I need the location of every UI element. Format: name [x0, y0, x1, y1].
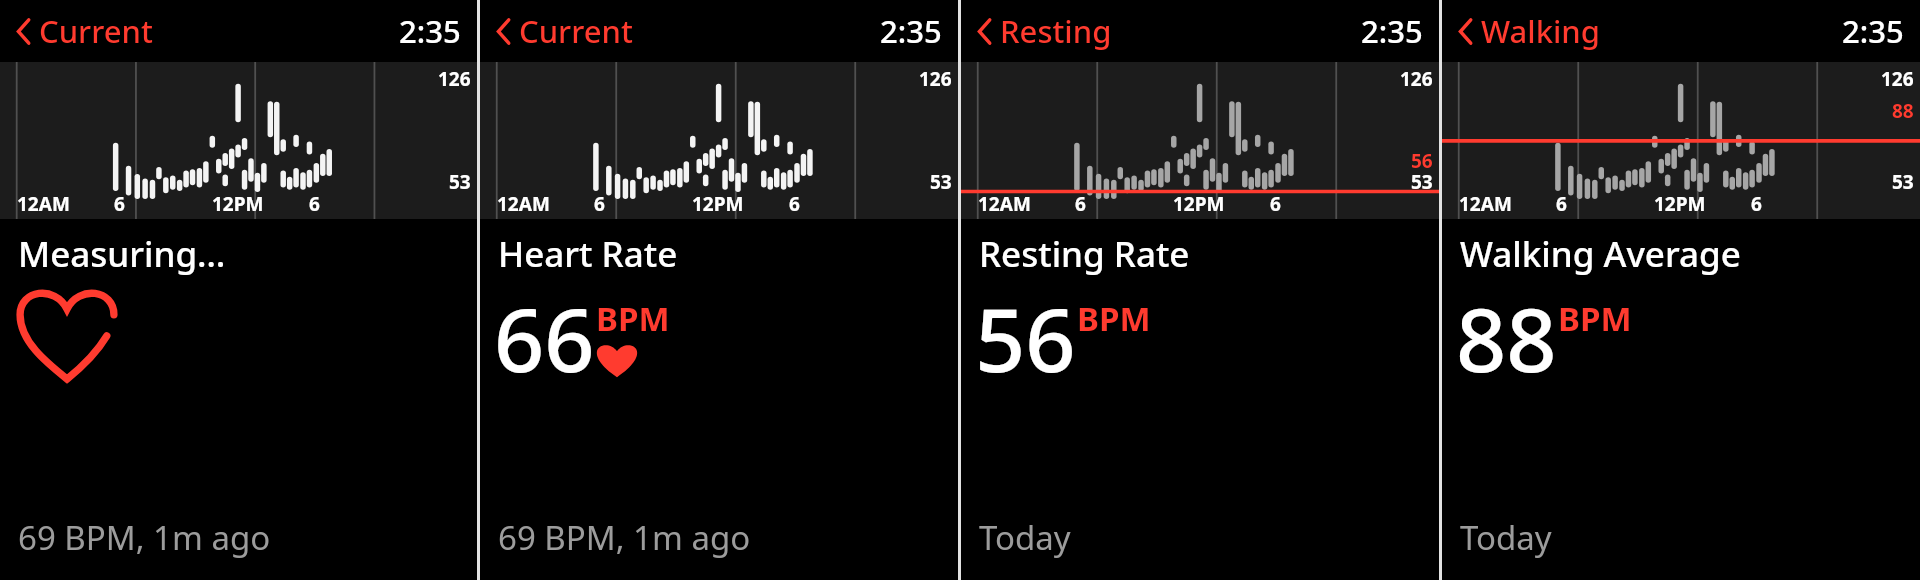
staticText: 126	[438, 66, 471, 92]
staticText: 53	[930, 169, 952, 195]
staticText: BPM	[1077, 296, 1151, 341]
staticText: 2:35	[1361, 10, 1423, 52]
staticText: 126	[1400, 66, 1433, 92]
staticText: 88	[1892, 98, 1914, 124]
staticText: 56	[975, 278, 1076, 398]
staticText: 6	[1270, 191, 1281, 217]
staticText: 88	[1456, 278, 1557, 398]
staticText: 6	[1075, 191, 1086, 217]
staticText: 12PM	[692, 191, 744, 217]
staticText: 2:35	[1842, 10, 1904, 52]
staticText: 6	[594, 191, 605, 217]
staticText: 53	[1892, 169, 1914, 195]
staticText: 2:35	[399, 10, 461, 52]
staticText: 53	[1411, 169, 1433, 195]
staticText: 6	[1556, 191, 1567, 217]
staticText: 69 BPM, 1m ago	[498, 515, 751, 560]
staticText: Resting Rate	[979, 230, 1190, 278]
staticText: Today	[979, 515, 1071, 560]
staticText: Current	[519, 10, 633, 52]
staticText: Current	[39, 10, 153, 52]
staticText: BPM	[596, 296, 670, 341]
staticText: 126	[1881, 66, 1914, 92]
staticText: Measuring…	[18, 230, 226, 278]
staticText: 6	[309, 191, 320, 217]
staticText: Today	[1460, 515, 1552, 560]
button[interactable]: Back to Current	[490, 4, 639, 58]
staticText: Walking Average	[1460, 230, 1741, 278]
staticText: 56	[1411, 148, 1433, 174]
staticText: 6	[114, 191, 125, 217]
staticText: 53	[449, 169, 471, 195]
staticText: 12PM	[212, 191, 264, 217]
staticText: BPM	[1558, 296, 1632, 341]
staticText: 12AM	[1459, 191, 1512, 217]
staticText: 12PM	[1173, 191, 1225, 217]
staticText: 12AM	[17, 191, 70, 217]
staticText: Walking	[1481, 10, 1601, 52]
button[interactable]: Back to Walking	[1452, 4, 1607, 58]
staticText: 12PM	[1654, 191, 1706, 217]
staticText: 12AM	[978, 191, 1031, 217]
staticText: 66	[494, 278, 595, 398]
staticText: 12AM	[497, 191, 550, 217]
staticText: 69 BPM, 1m ago	[18, 515, 271, 560]
staticText: Heart Rate	[498, 230, 678, 278]
staticText: 6	[1751, 191, 1762, 217]
staticText: 6	[789, 191, 800, 217]
staticText: Resting	[1000, 10, 1112, 52]
staticText: 126	[919, 66, 952, 92]
staticText: 2:35	[880, 10, 942, 52]
button[interactable]: Back to Current	[10, 4, 159, 58]
button[interactable]: Back to Resting	[971, 4, 1118, 58]
